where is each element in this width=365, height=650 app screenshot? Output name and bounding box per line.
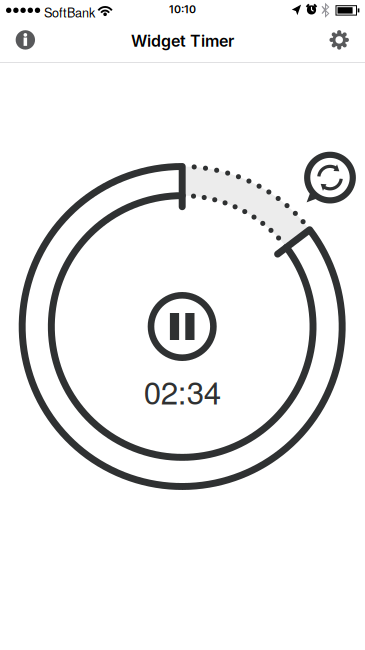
staticText: 02:34 [144, 369, 221, 413]
staticText: SoftBank [44, 3, 95, 21]
button[interactable]: Repeat [0, 0, 365, 650]
button[interactable]: Info [0, 0, 365, 650]
button[interactable]: Pause [0, 0, 365, 650]
staticText: Widget Timer [131, 31, 234, 51]
button[interactable]: Settings [0, 0, 365, 650]
staticText: 10:10 [169, 3, 196, 16]
